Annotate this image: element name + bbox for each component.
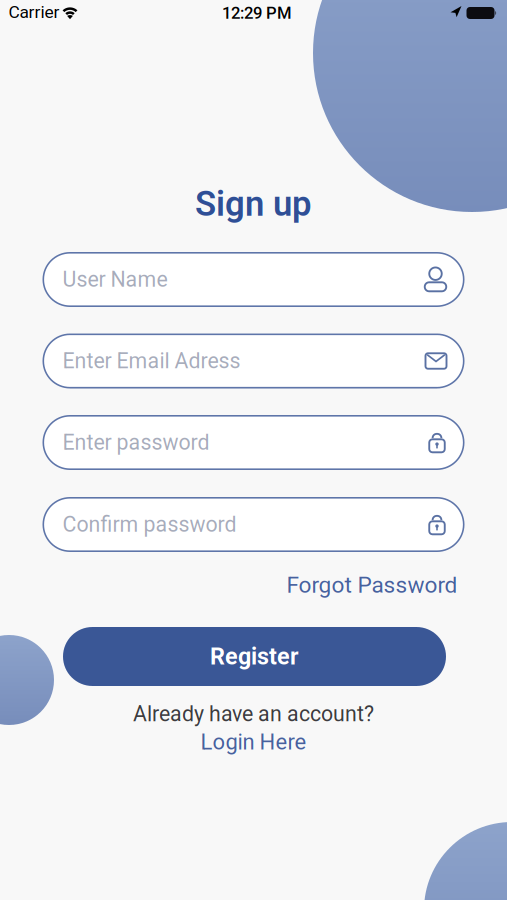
- staticText: Confirm password: [62, 512, 236, 537]
- staticText: 12:29 PM: [222, 3, 292, 23]
- button[interactable]: Confirm password: [42, 497, 464, 552]
- button[interactable]: Forgot Password: [286, 572, 457, 598]
- staticText: Register: [210, 643, 299, 670]
- button[interactable]: Enter password: [42, 415, 464, 470]
- staticText: Login Here: [200, 729, 306, 755]
- staticText: Already have an account?: [133, 701, 374, 726]
- staticText: Forgot Password: [286, 572, 457, 598]
- button[interactable]: Login Here: [200, 729, 306, 755]
- button[interactable]: User Name: [42, 252, 464, 307]
- staticText: Enter Email Adress: [62, 348, 240, 373]
- staticText: User Name: [62, 267, 167, 292]
- button[interactable]: Enter Email Adress: [42, 333, 464, 388]
- staticText: Enter password: [62, 430, 209, 455]
- staticText: Carrier: [8, 2, 59, 22]
- staticText: Sign up: [195, 184, 312, 224]
- button[interactable]: Register: [63, 627, 446, 686]
